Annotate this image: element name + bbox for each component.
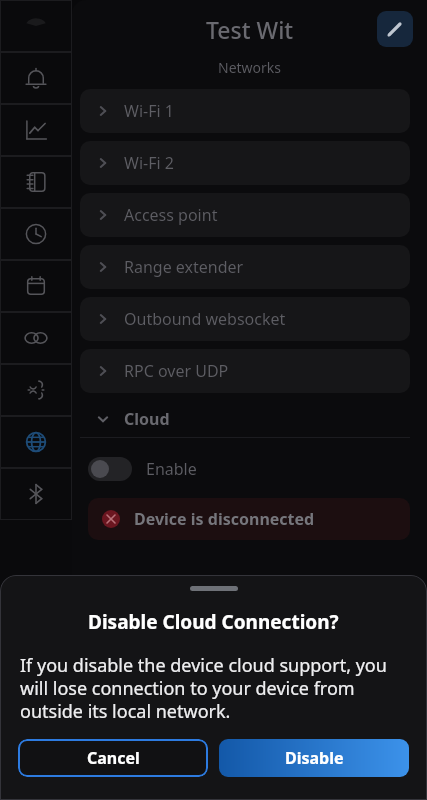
staticText: Networks [72, 58, 427, 77]
staticText: Cloud [124, 408, 170, 430]
button[interactable]: Menu item [0, 52, 72, 104]
button[interactable]: Cloud [80, 401, 410, 437]
button[interactable]: Disable [219, 739, 409, 777]
button[interactable]: RPC over UDP [80, 349, 410, 393]
staticText: Device is disconnected [134, 508, 315, 530]
button[interactable]: Access point [80, 193, 410, 237]
staticText: Disable Cloud Connection? [88, 609, 339, 635]
staticText: Range extender [124, 256, 244, 278]
button[interactable]: Network [0, 416, 72, 468]
button[interactable]: Enable [80, 452, 197, 486]
button[interactable]: Menu item [0, 260, 72, 312]
button[interactable]: Menu item [0, 208, 72, 260]
button[interactable]: Cancel [18, 739, 208, 777]
staticText: Wi-Fi 1 [124, 100, 174, 122]
button[interactable]: Edit [377, 11, 413, 47]
button[interactable]: Menu item [0, 156, 72, 208]
button[interactable]: Outbound websocket [80, 297, 410, 341]
staticText: Cancel [87, 747, 140, 769]
button[interactable]: Menu item [0, 104, 72, 156]
staticText: Access point [124, 204, 218, 226]
button[interactable]: Menu item [0, 0, 72, 52]
staticText: Wi-Fi 2 [124, 152, 174, 174]
staticText: RPC over UDP [124, 360, 229, 382]
staticText: Test Wit [206, 14, 294, 45]
staticText: Enable [146, 458, 197, 480]
button[interactable]: Wi-Fi 2 [80, 141, 410, 185]
button[interactable]: Menu item [0, 312, 72, 364]
staticText: Disable [285, 747, 344, 769]
staticText: Outbound websocket [124, 308, 286, 330]
button[interactable]: Wi-Fi 1 [80, 89, 410, 133]
button[interactable]: Range extender [80, 245, 410, 289]
button[interactable]: Menu item [0, 468, 72, 520]
button[interactable]: Menu item [0, 364, 72, 416]
staticText: If you disable the device cloud support,… [20, 653, 407, 723]
